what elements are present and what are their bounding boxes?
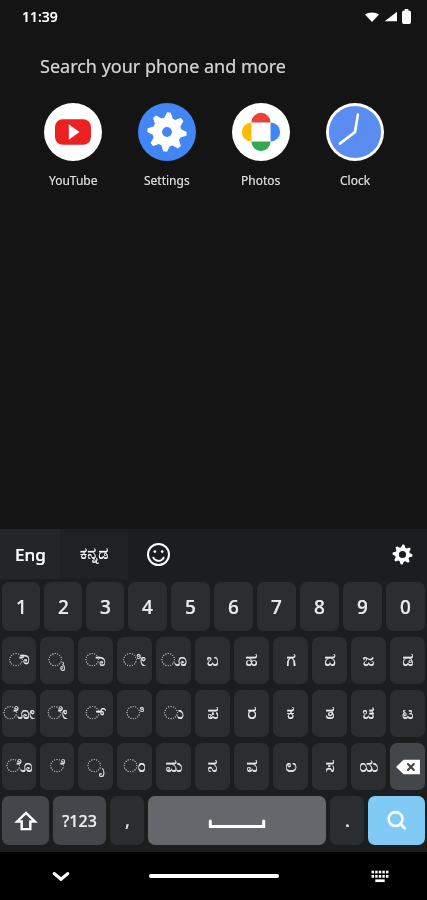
button[interactable]: 7 — [257, 582, 296, 631]
staticText: ು — [164, 705, 184, 723]
button[interactable]: ೆ — [40, 743, 74, 790]
staticText: ಮ — [165, 758, 183, 776]
staticText: Settings — [144, 172, 190, 188]
button[interactable]: ಬ — [195, 637, 230, 684]
staticText: 11:39 — [22, 7, 58, 26]
button[interactable]: ೌ — [2, 637, 36, 684]
staticText: ೃ — [87, 758, 105, 776]
staticText: ೊ — [6, 758, 33, 776]
staticText: ಬ — [206, 652, 219, 670]
button[interactable]: Search — [368, 796, 425, 845]
button[interactable]: ಕನ್ನಡ — [60, 529, 128, 579]
button[interactable]: ನ — [195, 743, 230, 790]
staticText: ಜ — [362, 652, 375, 670]
staticText: Photos — [241, 172, 281, 188]
staticText: ೆ — [50, 758, 65, 776]
button[interactable]: 0 — [386, 582, 425, 631]
button[interactable]: ಡ — [390, 637, 425, 684]
staticText: 0 — [400, 594, 411, 620]
button[interactable]: ೇ — [40, 690, 74, 737]
button[interactable]: 4 — [128, 582, 167, 631]
button[interactable]: ಮ — [156, 743, 191, 790]
staticText: 7 — [271, 594, 282, 620]
staticText: ಹ — [245, 652, 258, 670]
button[interactable]: ು — [156, 690, 191, 737]
button[interactable]: ?123 — [53, 796, 106, 845]
staticText: , — [125, 808, 130, 833]
button[interactable]: ೂ — [156, 637, 191, 684]
button[interactable]: Emoji — [128, 529, 188, 579]
staticText: ಕ — [286, 705, 295, 723]
staticText: ಟ — [402, 705, 414, 723]
button[interactable]: Keyboard settings — [377, 529, 427, 579]
button[interactable]: Settings — [120, 101, 214, 190]
button[interactable]: 8 — [300, 582, 339, 631]
button[interactable]: Change keyboard — [363, 859, 397, 893]
button[interactable]: ಿ — [117, 690, 152, 737]
staticText: 8 — [314, 594, 325, 620]
button[interactable]: ಚ — [351, 690, 386, 737]
button[interactable]: ವ — [234, 743, 269, 790]
button[interactable]: Space — [148, 796, 326, 845]
button[interactable]: ೀ — [117, 637, 152, 684]
button[interactable]: 2 — [44, 582, 82, 631]
button[interactable]: ೖ — [40, 637, 74, 684]
button[interactable]: . — [330, 796, 364, 845]
button[interactable]: YouTube — [26, 101, 120, 190]
button[interactable]: 5 — [171, 582, 210, 631]
staticText: 4 — [142, 594, 153, 620]
button[interactable]: ಜ — [351, 637, 386, 684]
staticText: ಚ — [362, 705, 375, 723]
staticText: 9 — [357, 594, 368, 620]
button[interactable]: ಾ — [78, 637, 113, 684]
button[interactable]: ಂ — [117, 743, 152, 790]
button[interactable]: ಕ — [273, 690, 308, 737]
staticText: ಸ — [325, 758, 335, 776]
button[interactable]: Eng — [0, 529, 60, 579]
button[interactable]: ರ — [234, 690, 269, 737]
button[interactable]: , — [110, 796, 144, 845]
button[interactable]: Clock — [308, 101, 402, 190]
button[interactable]: ್ — [78, 690, 113, 737]
staticText: YouTube — [49, 172, 98, 188]
button[interactable]: ಪ — [195, 690, 230, 737]
staticText: ಕನ್ನಡ — [80, 546, 109, 562]
button[interactable]: ಟ — [390, 690, 425, 737]
button[interactable]: 1 — [2, 582, 40, 631]
staticText: ಪ — [207, 705, 219, 723]
staticText: ಿ — [126, 705, 144, 723]
button[interactable]: Hide keyboard — [44, 859, 78, 893]
staticText: 5 — [185, 594, 196, 620]
button[interactable]: ಸ — [312, 743, 347, 790]
staticText: ವ — [246, 758, 258, 776]
staticText: ದ — [324, 652, 336, 670]
button[interactable]: ದ — [312, 637, 347, 684]
staticText: ಯ — [359, 758, 379, 776]
button[interactable]: ಹ — [234, 637, 269, 684]
staticText: ರ — [247, 705, 257, 723]
button[interactable]: Photos — [214, 101, 308, 190]
button[interactable]: ೃ — [78, 743, 113, 790]
button[interactable]: 6 — [214, 582, 253, 631]
button[interactable]: 3 — [86, 582, 124, 631]
button[interactable]: ಗ — [273, 637, 308, 684]
staticText: ೂ — [161, 652, 187, 670]
button[interactable]: ೊ — [2, 743, 36, 790]
button[interactable]: ೋ — [2, 690, 36, 737]
staticText: ೇ — [47, 705, 68, 723]
staticText: 1 — [16, 594, 27, 620]
button[interactable]: ಯ — [351, 743, 386, 790]
button[interactable]: ತ — [312, 690, 347, 737]
button[interactable]: ಲ — [273, 743, 308, 790]
staticText: 6 — [228, 594, 239, 620]
staticText: ಡ — [402, 652, 414, 670]
button[interactable]: Shift — [2, 796, 49, 845]
staticText: Eng — [15, 543, 46, 566]
staticText: ಲ — [285, 758, 297, 776]
staticText: ತ — [325, 705, 335, 723]
staticText: ೖ — [48, 652, 66, 670]
button[interactable]: Backspace — [390, 743, 425, 790]
staticText: Search your phone and more — [40, 54, 286, 79]
button[interactable]: 9 — [343, 582, 382, 631]
staticText: ೀ — [123, 652, 146, 670]
